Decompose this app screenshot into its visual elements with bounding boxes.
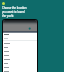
staticText: Choose the location you want to board th… (2, 6, 32, 18)
button[interactable] (3, 49, 37, 53)
button[interactable] (3, 65, 37, 69)
button[interactable] (3, 61, 37, 65)
button[interactable] (3, 69, 37, 72)
button[interactable] (3, 57, 37, 61)
button[interactable] (3, 53, 37, 57)
button[interactable] (3, 45, 37, 49)
button[interactable]: Logo (2, 2, 5, 5)
button[interactable] (3, 41, 37, 45)
